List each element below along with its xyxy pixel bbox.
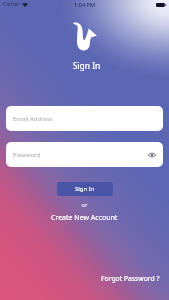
staticText: Sign In xyxy=(75,185,95,193)
button[interactable]: Forgot Password ? xyxy=(99,272,162,285)
staticText: Email Address xyxy=(13,115,53,123)
staticText: Carrier xyxy=(3,1,20,8)
staticText: Create New Account xyxy=(51,213,118,223)
staticText: Sign In xyxy=(2,60,169,72)
staticText: 1:04 PM xyxy=(74,1,96,9)
button[interactable]: Show password xyxy=(146,149,158,161)
button[interactable]: Create New Account xyxy=(47,212,122,224)
button[interactable]: Password xyxy=(6,142,163,167)
staticText: Forgot Password ? xyxy=(101,274,160,283)
staticText: or xyxy=(0,201,169,209)
button[interactable]: Email Address xyxy=(6,106,163,131)
staticText: Password xyxy=(13,151,41,159)
button[interactable]: Sign In xyxy=(57,182,113,196)
